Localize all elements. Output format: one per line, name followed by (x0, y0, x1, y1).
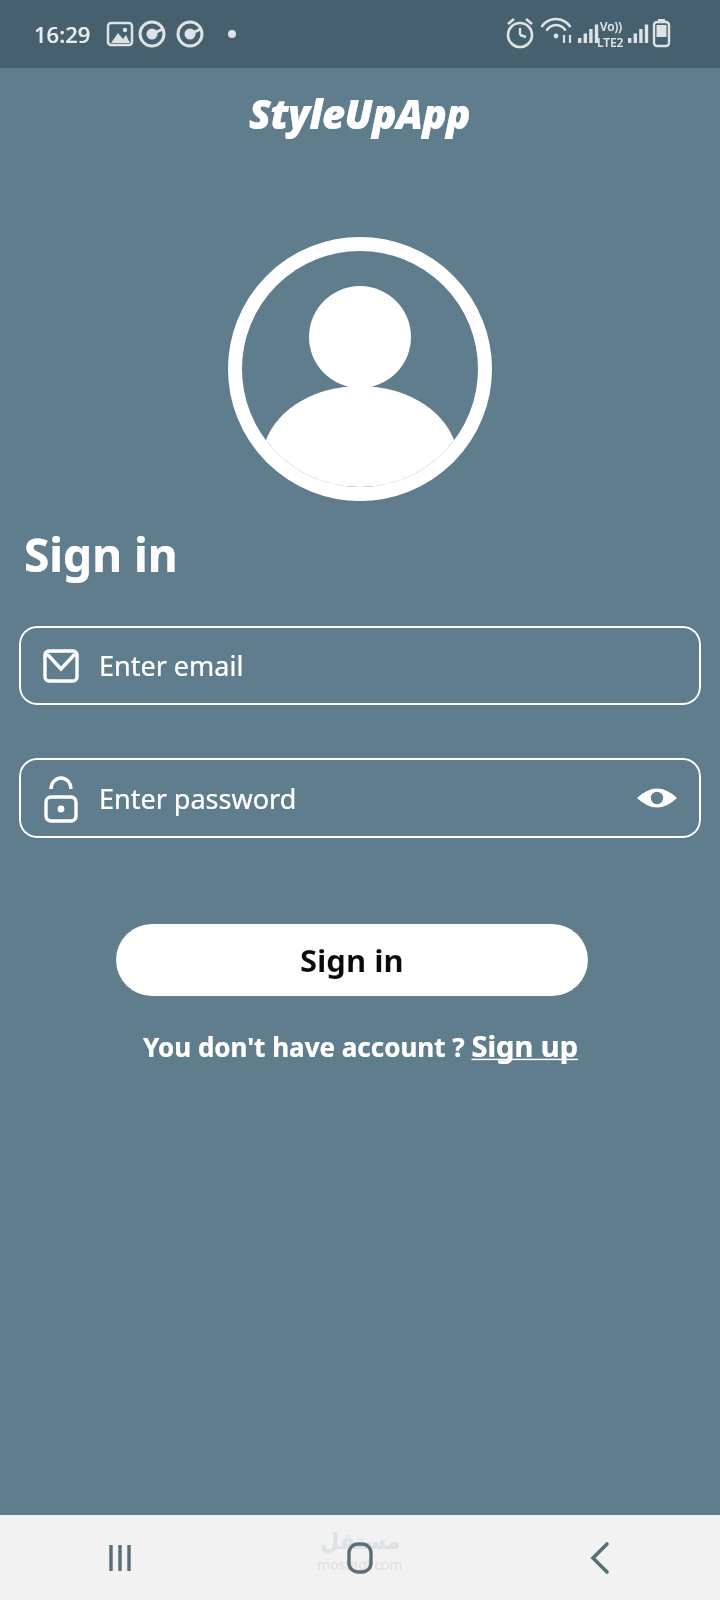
button[interactable]: Enter password (19, 758, 701, 838)
button[interactable]: Show password (633, 774, 681, 822)
button[interactable]: Enter email (19, 626, 701, 705)
staticText: Enter password (99, 780, 297, 817)
staticText: Sign in (24, 523, 178, 586)
staticText: Vo)) (600, 18, 622, 34)
staticText: 16:29 (34, 19, 91, 49)
staticText: Sign in (300, 939, 404, 981)
staticText: StyleUpApp (249, 86, 471, 140)
staticText: mostaql.com (317, 1555, 403, 1574)
staticText: You don't have account ? Sign up (143, 1026, 578, 1065)
staticText: مستقل (320, 1529, 401, 1555)
button[interactable]: Home (240, 1515, 480, 1600)
button[interactable]: Sign in (116, 924, 588, 996)
staticText: LTE2 (597, 34, 624, 50)
button[interactable]: Recent apps (0, 1515, 240, 1600)
button[interactable]: You don't have account ? Sign up (131, 1020, 590, 1071)
staticText: Enter email (99, 647, 244, 684)
button[interactable]: Back (480, 1515, 720, 1600)
